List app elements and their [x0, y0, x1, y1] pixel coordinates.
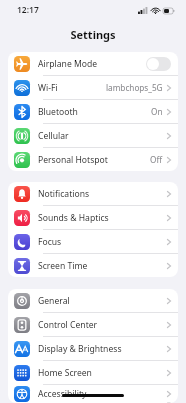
button[interactable]: Bluetooth: [8, 100, 178, 123]
staticText: Screen Time: [38, 260, 88, 272]
staticText: Accessibility: [38, 388, 87, 400]
staticText: Focus: [38, 236, 62, 248]
button[interactable]: Airplane Mode: [8, 52, 178, 75]
staticText: On: [151, 106, 163, 117]
staticText: Wi-Fi: [38, 82, 58, 94]
button[interactable]: General: [8, 289, 178, 312]
staticText: Home Screen: [38, 367, 92, 379]
button[interactable]: Wi-Fi: [8, 76, 178, 99]
button[interactable]: Control Center: [8, 313, 178, 336]
staticText: Off: [150, 154, 163, 165]
staticText: Airplane Mode: [38, 58, 98, 70]
button[interactable]: Notifications: [8, 182, 178, 205]
staticText: Cellular: [38, 130, 69, 142]
button[interactable]: Home Screen: [8, 361, 178, 384]
staticText: Notifications: [38, 188, 90, 200]
staticText: Personal Hotspot: [38, 154, 108, 166]
staticText: General: [38, 295, 70, 307]
button[interactable]: Airplane Mode toggle: [146, 57, 171, 71]
button[interactable]: Sounds & Haptics: [8, 206, 178, 229]
staticText: Settings: [70, 27, 116, 42]
button[interactable]: Screen Time: [8, 254, 178, 277]
staticText: Bluetooth: [38, 106, 78, 118]
button[interactable]: Personal Hotspot: [8, 148, 178, 171]
staticText: 12:17: [17, 4, 39, 16]
staticText: Sounds & Haptics: [38, 212, 109, 224]
staticText: Control Center: [38, 319, 98, 331]
button[interactable]: Focus: [8, 230, 178, 253]
button[interactable]: Accessibility: [8, 385, 178, 403]
staticText: Display & Brightness: [38, 343, 122, 355]
button[interactable]: Display & Brightness: [8, 337, 178, 360]
button[interactable]: Cellular: [8, 124, 178, 147]
staticText: lambchops_5G: [106, 82, 163, 93]
